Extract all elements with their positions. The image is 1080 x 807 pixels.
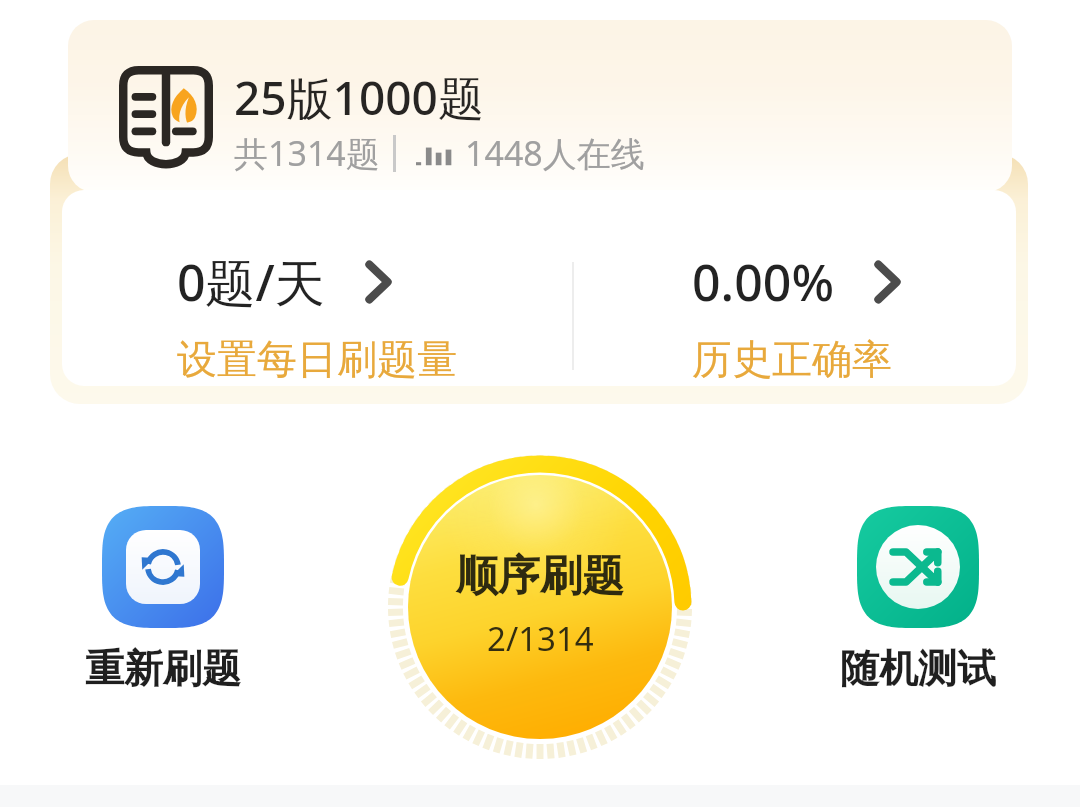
button[interactable]: 0.00%: [574, 234, 1016, 398]
other: Restart quiz: [136, 540, 190, 594]
button[interactable]: [68, 20, 1012, 192]
staticText: 共1314题: [234, 130, 380, 176]
staticText: 1448人在线: [465, 130, 645, 176]
staticText: 设置每日刷题量: [177, 334, 457, 384]
staticText: 历史正确率: [692, 334, 892, 384]
staticText: 0.00%: [692, 248, 834, 316]
other: Random test: [892, 541, 944, 593]
staticText: 25版1000题: [234, 66, 484, 129]
button[interactable]: 0题/天: [62, 234, 572, 398]
staticText: 0题/天: [177, 248, 325, 316]
staticText: 2/1314: [487, 616, 594, 661]
staticText: 顺序刷题: [456, 550, 624, 603]
button[interactable]: 顺序刷题: [408, 475, 672, 739]
staticText: 重新刷题: [85, 644, 241, 693]
button[interactable]: Restart quiz: [75, 506, 250, 693]
button[interactable]: Random test: [830, 506, 1005, 693]
staticText: 随机测试: [840, 644, 996, 693]
